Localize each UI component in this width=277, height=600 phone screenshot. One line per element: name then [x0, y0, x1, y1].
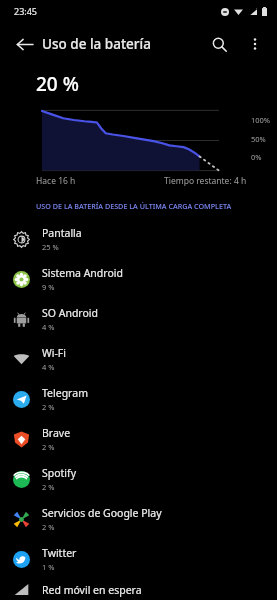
- staticText: Brave: [42, 426, 71, 440]
- button[interactable]: SO Android: [0, 299, 277, 339]
- staticText: 2 %: [42, 482, 55, 492]
- staticText: Pantalla: [42, 226, 82, 240]
- staticText: 9 %: [42, 282, 55, 292]
- staticText: 1 %: [42, 562, 55, 572]
- button[interactable]: Wi-Fi: [0, 339, 277, 379]
- button[interactable]: Atrás: [6, 26, 42, 62]
- staticText: 4 %: [42, 362, 55, 372]
- staticText: 20 %: [36, 71, 79, 97]
- button[interactable]: Pantalla: [0, 219, 277, 259]
- staticText: 100%: [251, 115, 271, 125]
- staticText: Uso de la batería: [42, 35, 151, 53]
- staticText: Tiempo restante: 4 h: [164, 175, 247, 187]
- staticText: Telegram: [42, 386, 88, 400]
- staticText: USO DE LA BATERÍA DESDE LA ÚLTIMA CARGA …: [36, 201, 265, 211]
- staticText: Sistema Android: [42, 266, 123, 280]
- button[interactable]: Twitter: [0, 539, 277, 579]
- button[interactable]: Buscar: [201, 26, 237, 62]
- button[interactable]: Red móvil en espera: [0, 579, 277, 600]
- staticText: 23:45: [14, 5, 38, 17]
- button[interactable]: Telegram: [0, 379, 277, 419]
- staticText: 25 %: [42, 242, 59, 252]
- button[interactable]: Servicios de Google Play: [0, 499, 277, 539]
- staticText: 4 %: [42, 322, 55, 332]
- staticText: Spotify: [42, 466, 77, 480]
- staticText: Red móvil en espera: [42, 583, 142, 597]
- staticText: 0%: [251, 152, 262, 162]
- staticText: SO Android: [42, 306, 98, 320]
- staticText: Twitter: [42, 546, 77, 560]
- button[interactable]: Más opciones: [237, 26, 273, 62]
- staticText: 50%: [251, 134, 266, 144]
- staticText: 2 %: [42, 442, 55, 452]
- button[interactable]: Sistema Android: [0, 259, 277, 299]
- staticText: Servicios de Google Play: [42, 506, 162, 520]
- button[interactable]: Brave: [0, 419, 277, 459]
- staticText: Hace 16 h: [36, 175, 76, 187]
- button[interactable]: Spotify: [0, 459, 277, 499]
- staticText: 2 %: [42, 522, 55, 532]
- staticText: 2 %: [42, 402, 55, 412]
- staticText: Wi-Fi: [42, 346, 67, 360]
